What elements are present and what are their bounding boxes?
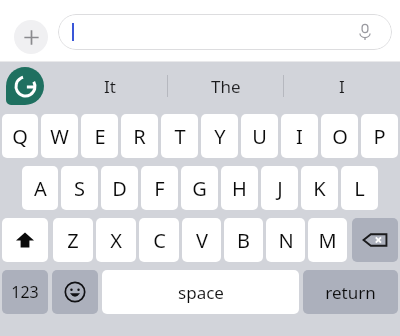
- staticText: O: [332, 123, 348, 150]
- button[interactable]: W: [41, 114, 78, 158]
- button[interactable]: R: [121, 114, 158, 158]
- staticText: R: [133, 123, 146, 150]
- staticText: 123: [11, 281, 39, 303]
- staticText: U: [252, 123, 267, 150]
- button[interactable]: O: [321, 114, 358, 158]
- button[interactable]: Emoji: [52, 270, 98, 314]
- button[interactable]: F: [141, 166, 178, 210]
- button[interactable]: C: [139, 218, 179, 262]
- staticText: B: [237, 227, 250, 254]
- staticText: X: [110, 227, 122, 254]
- button[interactable]: T: [161, 114, 198, 158]
- button[interactable]: V: [182, 218, 221, 262]
- button[interactable]: X: [96, 218, 136, 262]
- staticText: S: [74, 175, 85, 202]
- staticText: I: [339, 75, 345, 98]
- button[interactable]: space: [102, 270, 299, 314]
- button[interactable]: A: [22, 166, 58, 210]
- button[interactable]: M: [308, 218, 347, 262]
- button[interactable]: Y: [201, 114, 238, 158]
- button[interactable]: Add: [14, 20, 48, 54]
- staticText: C: [153, 227, 166, 254]
- other: Voice input: [356, 23, 374, 41]
- button[interactable]: It: [52, 62, 168, 110]
- staticText: Q: [12, 123, 28, 150]
- button[interactable]: return: [303, 270, 398, 314]
- staticText: J: [277, 175, 283, 202]
- button[interactable]: B: [224, 218, 263, 262]
- staticText: D: [112, 175, 127, 202]
- button[interactable]: E: [81, 114, 118, 158]
- button[interactable]: P: [361, 114, 398, 158]
- button[interactable]: Shift: [2, 218, 48, 262]
- button[interactable]: Q: [2, 114, 38, 158]
- staticText: L: [354, 175, 365, 202]
- staticText: E: [94, 123, 106, 150]
- staticText: I: [296, 123, 303, 150]
- button[interactable]: The: [168, 62, 284, 110]
- button[interactable]: J: [261, 166, 298, 210]
- button[interactable]: Backspace: [352, 218, 398, 262]
- button[interactable]: H: [221, 166, 258, 210]
- staticText: H: [232, 175, 247, 202]
- staticText: A: [34, 175, 47, 202]
- button[interactable]: I: [284, 62, 400, 110]
- staticText: N: [278, 227, 294, 254]
- button[interactable]: 123: [2, 270, 48, 314]
- staticText: F: [154, 175, 165, 202]
- staticText: Y: [214, 123, 226, 150]
- staticText: V: [196, 227, 208, 254]
- staticText: G: [192, 175, 207, 202]
- staticText: P: [373, 123, 386, 150]
- staticText: K: [313, 175, 326, 202]
- button[interactable]: N: [266, 218, 305, 262]
- button[interactable]: S: [61, 166, 98, 210]
- button[interactable]: L: [341, 166, 378, 210]
- staticText: space: [178, 281, 224, 304]
- staticText: return: [325, 281, 376, 304]
- button[interactable]: G: [181, 166, 218, 210]
- button[interactable]: U: [241, 114, 278, 158]
- staticText: Z: [67, 227, 79, 254]
- staticText: M: [318, 227, 337, 254]
- button[interactable]: Z: [53, 218, 93, 262]
- staticText: The: [211, 75, 241, 98]
- button[interactable]: I: [281, 114, 318, 158]
- button[interactable]: Voice input: [58, 14, 392, 50]
- staticText: T: [174, 123, 186, 150]
- button[interactable]: K: [301, 166, 338, 210]
- button[interactable]: Grammarly: [6, 67, 44, 105]
- staticText: W: [50, 123, 69, 150]
- staticText: It: [104, 75, 116, 98]
- button[interactable]: D: [101, 166, 138, 210]
